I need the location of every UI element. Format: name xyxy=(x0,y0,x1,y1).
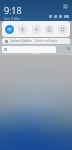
button[interactable]: More settings xyxy=(58,25,67,34)
button[interactable]: Settings xyxy=(62,3,69,10)
button[interactable] xyxy=(2,46,56,53)
button[interactable]: Bluetooth xyxy=(18,25,27,34)
button[interactable]: Flashlight xyxy=(32,25,41,34)
staticText: Device software xyxy=(35,39,58,43)
staticText: Sun, 9 Mar xyxy=(4,17,21,21)
button[interactable]: System Update xyxy=(2,38,70,44)
staticText: System Update xyxy=(10,39,32,43)
staticText: 9:18 xyxy=(4,4,22,16)
button[interactable]: Auto rotate xyxy=(45,25,54,34)
button[interactable]: Wi-Fi xyxy=(5,25,14,34)
